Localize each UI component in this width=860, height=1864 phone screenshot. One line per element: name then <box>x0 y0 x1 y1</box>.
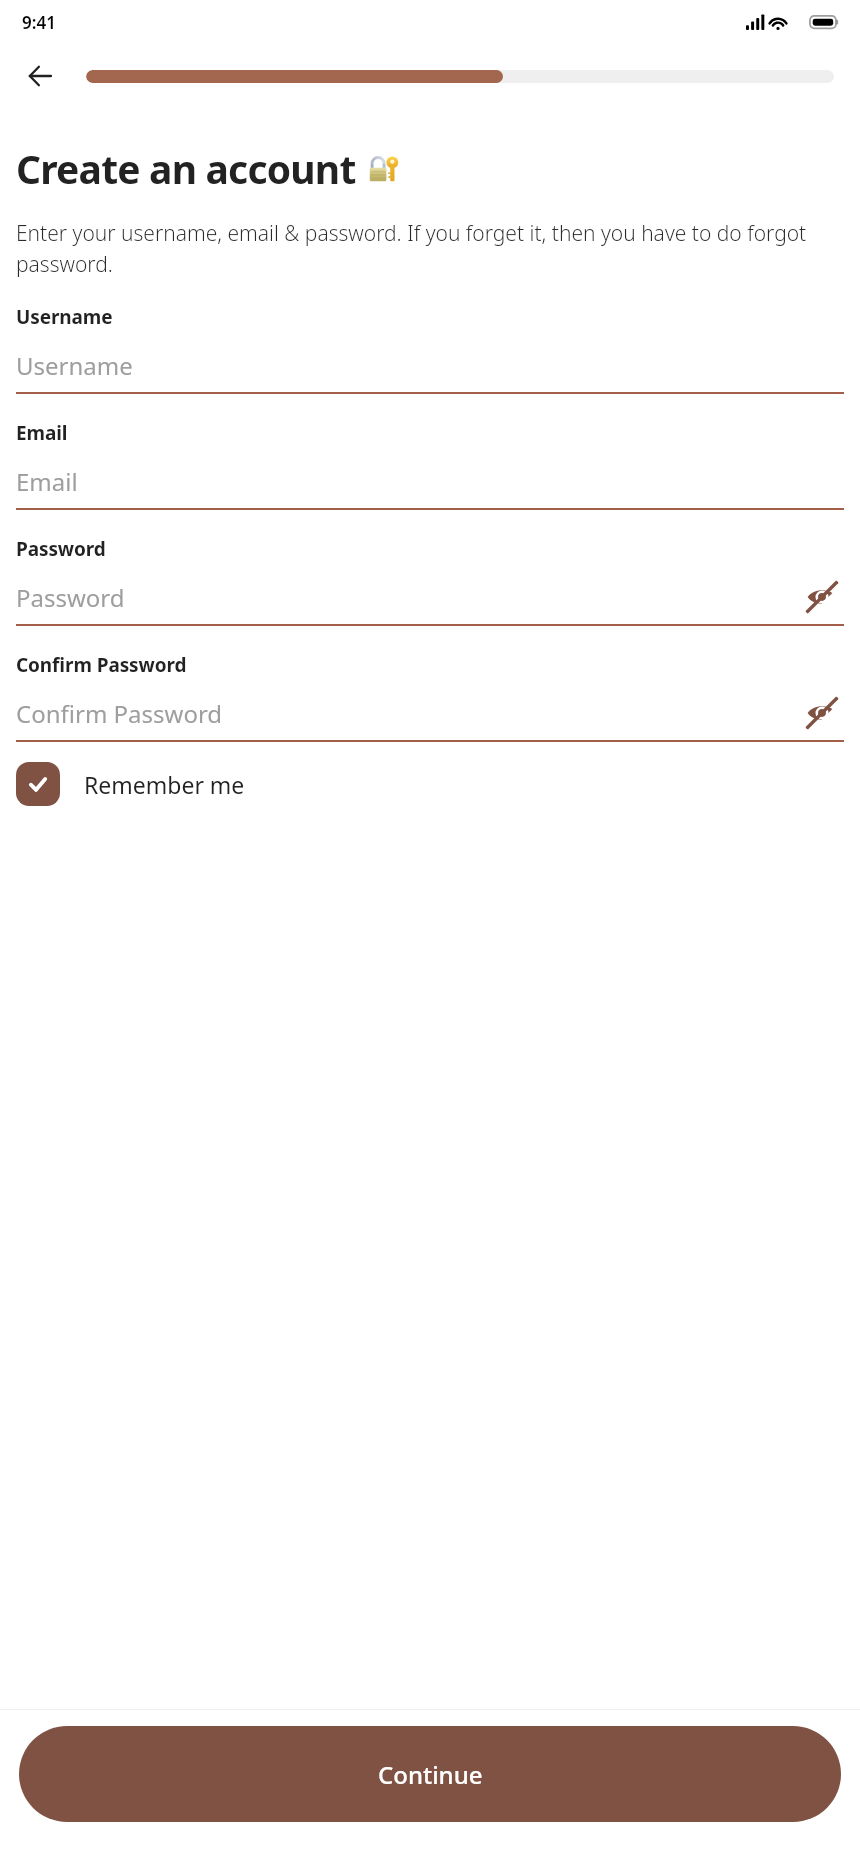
staticText: Username <box>16 349 844 382</box>
staticText: Confirm Password <box>16 652 187 678</box>
staticText: Email <box>16 420 68 446</box>
staticText: Username <box>16 304 113 330</box>
staticText: Remember me <box>84 769 245 800</box>
button[interactable]: Show password <box>800 691 844 735</box>
staticText: Confirm Password <box>16 697 800 730</box>
button[interactable]: Email <box>16 454 844 508</box>
staticText: Password <box>16 536 106 562</box>
button[interactable]: Username <box>16 338 844 392</box>
staticText: 9:41 <box>22 11 56 34</box>
button[interactable]: Password <box>16 570 844 624</box>
staticText: Password <box>16 581 800 614</box>
staticText: Email <box>16 465 844 498</box>
button[interactable]: Continue <box>19 1726 841 1822</box>
button[interactable]: Back <box>16 52 64 100</box>
button[interactable]: Remember me <box>16 762 844 806</box>
staticText: Create an account <box>16 142 356 195</box>
staticText: Enter your username, email & password. I… <box>16 219 844 278</box>
staticText: Continue <box>378 1758 483 1791</box>
button[interactable]: Confirm Password <box>16 686 844 740</box>
button[interactable]: Show password <box>800 575 844 619</box>
